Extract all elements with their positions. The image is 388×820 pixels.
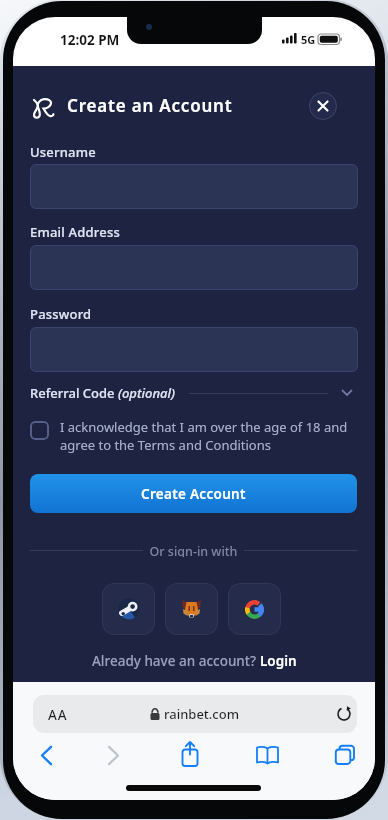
button[interactable]	[37, 744, 55, 766]
button[interactable]	[102, 583, 155, 635]
button[interactable]: I acknowledge that I am over the age of …	[30, 418, 358, 454]
staticText: Or sign-in with	[143, 543, 244, 557]
staticText: Already have an account?	[92, 652, 260, 670]
staticText: Create Account	[141, 485, 246, 503]
staticText: Password	[30, 305, 92, 323]
button[interactable]	[255, 744, 279, 766]
button[interactable]	[165, 583, 218, 635]
staticText: Username	[30, 143, 96, 161]
button[interactable]	[104, 744, 122, 766]
staticText: rainbet.com	[164, 705, 240, 723]
button[interactable]	[30, 327, 358, 372]
button[interactable]	[30, 245, 358, 290]
button[interactable]	[179, 740, 201, 768]
button[interactable]: AA	[33, 695, 357, 733]
button[interactable]: Referral Code (optional)	[30, 382, 352, 404]
staticText: Create an Account	[67, 94, 233, 117]
staticText: 5G	[301, 32, 316, 47]
staticText: Email Address	[30, 223, 120, 241]
button[interactable]: Login	[260, 652, 297, 670]
staticText: AA	[48, 706, 68, 724]
button[interactable]	[30, 164, 358, 209]
button[interactable]	[333, 744, 357, 766]
button[interactable]: Create Account	[30, 474, 357, 513]
staticText: 12:02 PM	[60, 31, 120, 49]
staticText: Referral Code (optional)	[30, 384, 175, 402]
button[interactable]	[228, 583, 281, 635]
button[interactable]	[309, 92, 337, 120]
staticText: I acknowledge that I am over the age of …	[60, 418, 348, 454]
